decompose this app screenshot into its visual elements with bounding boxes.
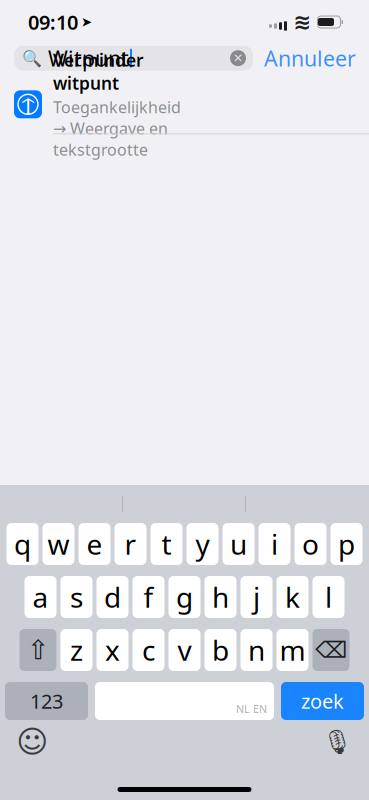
staticText: ✕ [233, 51, 243, 65]
staticText: ≋ [293, 10, 311, 34]
button[interactable]: l [312, 576, 344, 618]
staticText: ☺ [16, 725, 48, 759]
button[interactable]: Clear text [223, 46, 253, 71]
staticText: v [177, 631, 191, 669]
staticText: i [271, 525, 278, 563]
staticText: w [47, 525, 69, 563]
staticText: 123 [30, 688, 63, 714]
button[interactable]: u [222, 523, 254, 565]
button[interactable]: Space [95, 682, 274, 720]
button[interactable]: h [204, 576, 236, 618]
button[interactable]: ᛏ [0, 84, 369, 124]
staticText: e [86, 525, 102, 563]
staticText: o [302, 525, 319, 563]
button[interactable]: o [294, 523, 326, 565]
staticText: g [176, 578, 193, 616]
staticText: r [124, 525, 136, 563]
button[interactable]: k [276, 576, 308, 618]
staticText: Verminder witpunt [53, 48, 144, 94]
staticText: c [142, 631, 155, 669]
staticText: a [32, 578, 48, 616]
button[interactable]: z [60, 629, 92, 671]
staticText: 🎙 [322, 728, 352, 756]
button[interactable]: m [276, 629, 308, 671]
button[interactable]: w [42, 523, 74, 565]
button[interactable]: d [96, 576, 128, 618]
button[interactable]: Delete [312, 629, 349, 671]
button[interactable]: Annuleer [253, 44, 356, 72]
button[interactable]: x [96, 629, 128, 671]
staticText: l [325, 578, 332, 616]
button[interactable]: v [168, 629, 200, 671]
staticText: ᛏ [22, 93, 34, 115]
button[interactable]: r [114, 523, 146, 565]
button[interactable]: n [240, 629, 272, 671]
button[interactable]: c [132, 629, 164, 671]
button[interactable]: zoek [281, 682, 364, 720]
staticText: zoek [301, 688, 344, 714]
button[interactable]: p [330, 523, 362, 565]
staticText: k [285, 578, 300, 616]
staticText: u [230, 525, 247, 563]
staticText: t [161, 525, 171, 563]
button[interactable]: Shift [19, 629, 56, 671]
staticText: d [104, 578, 121, 616]
button[interactable]: b [204, 629, 236, 671]
button[interactable]: Emoji [13, 725, 51, 759]
staticText: s [70, 578, 83, 616]
button[interactable]: q [6, 523, 38, 565]
staticText: p [338, 525, 355, 563]
button[interactable]: t [150, 523, 182, 565]
staticText: 09:10 [28, 9, 78, 35]
button[interactable]: j [240, 576, 272, 618]
staticText: ⌫ [315, 637, 347, 663]
button[interactable]: y [186, 523, 218, 565]
button[interactable]: s [60, 576, 92, 618]
staticText: Witpunt [48, 44, 129, 72]
button[interactable]: Dictate [318, 725, 356, 759]
button[interactable]: a [24, 576, 56, 618]
staticText: Annuleer [264, 44, 356, 72]
button[interactable]: i [258, 523, 290, 565]
staticText: y [195, 525, 209, 563]
staticText: NL EN [236, 702, 267, 716]
staticText: j [253, 578, 260, 616]
staticText: f [143, 578, 153, 616]
staticText: ⇧ [27, 635, 49, 665]
button[interactable]: f [132, 576, 164, 618]
staticText: m [279, 631, 305, 669]
staticText: q [14, 525, 31, 563]
staticText: b [212, 631, 229, 669]
staticText: n [248, 631, 265, 669]
staticText: x [105, 631, 120, 669]
staticText: h [212, 578, 229, 616]
button[interactable]: e [78, 523, 110, 565]
staticText: ➤ [81, 14, 92, 29]
staticText: Toegankelijkheid → Weergave en tekstgroo… [53, 96, 181, 160]
staticText: z [70, 631, 83, 669]
button[interactable]: 123 [5, 682, 88, 720]
staticText: 🔍 [22, 49, 42, 67]
button[interactable]: g [168, 576, 200, 618]
